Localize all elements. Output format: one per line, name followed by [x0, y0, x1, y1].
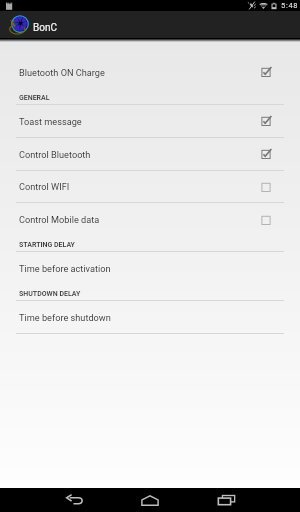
- button[interactable]: Control Bluetooth: [0, 138, 300, 171]
- button[interactable]: Time before activation: [0, 252, 300, 285]
- staticText: SHUTDOWN DELAY: [19, 290, 81, 298]
- button[interactable]: Control Mobile data: [0, 203, 300, 236]
- staticText: Bluetooth ON Charge: [19, 67, 105, 78]
- staticText: Time before shutdown: [19, 312, 111, 323]
- staticText: Time before activation: [19, 263, 111, 274]
- button[interactable]: Back: [56, 488, 92, 512]
- button[interactable]: Home: [132, 488, 168, 512]
- staticText: STARTING DELAY: [19, 241, 75, 249]
- button[interactable]: Recent apps: [208, 488, 244, 512]
- staticText: Control Mobile data: [19, 214, 100, 225]
- button[interactable]: Control WIFI: [0, 171, 300, 203]
- staticText: Control WIFI: [19, 181, 70, 192]
- staticText: GENERAL: [19, 94, 50, 102]
- staticText: Toast message: [19, 116, 82, 127]
- button[interactable]: Toast message: [0, 105, 300, 138]
- button[interactable]: Time before shutdown: [0, 301, 300, 334]
- staticText: Control Bluetooth: [19, 149, 91, 160]
- staticText: 5:48: [281, 1, 299, 10]
- staticText: BonC: [33, 22, 57, 34]
- button[interactable]: Bluetooth ON Charge: [0, 56, 300, 88]
